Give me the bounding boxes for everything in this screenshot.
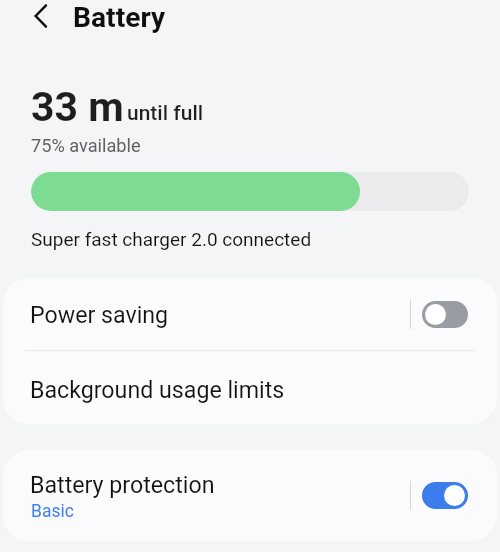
staticText: Power saving xyxy=(30,301,169,328)
button[interactable]: Background usage limits xyxy=(3,351,497,424)
button[interactable]: Turn on xyxy=(422,301,468,328)
button[interactable]: Navigate up xyxy=(20,0,60,33)
button[interactable]: Power saving xyxy=(3,278,497,350)
staticText: until full xyxy=(127,101,204,126)
staticText: Super fast charger 2.0 connected xyxy=(31,228,312,250)
staticText: Background usage limits xyxy=(30,376,285,403)
staticText: Battery xyxy=(73,1,166,34)
staticText: 33 m xyxy=(31,83,124,131)
staticText: 75% available xyxy=(31,135,141,156)
button[interactable]: Turn off xyxy=(422,482,468,509)
button[interactable]: Battery protection xyxy=(3,450,497,541)
staticText: Basic xyxy=(31,501,74,522)
staticText: Battery protection xyxy=(30,471,215,498)
